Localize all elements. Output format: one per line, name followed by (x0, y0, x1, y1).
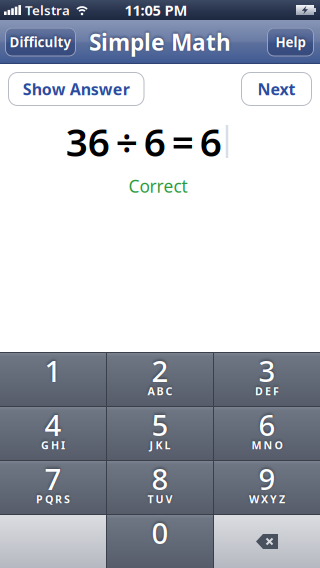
staticText: 36 ÷ 6 = 6 (66, 116, 222, 167)
staticText: Simple Math (89, 27, 231, 57)
staticText: D E F (255, 384, 279, 398)
staticText: Show Answer (23, 78, 130, 100)
staticText: 3 (258, 351, 275, 390)
staticText: G H I (41, 438, 65, 452)
staticText: 6 (258, 405, 275, 444)
button[interactable]: 4 (0, 407, 106, 460)
button[interactable]: Difficulty (5, 27, 76, 56)
staticText: A B C (147, 384, 172, 398)
button[interactable]: Next (241, 72, 312, 106)
staticText: Next (257, 78, 295, 100)
staticText: Difficulty (9, 33, 71, 51)
staticText: 1 (44, 351, 61, 390)
button[interactable]: 9 (214, 461, 320, 514)
button[interactable]: Help (267, 27, 314, 56)
staticText: 7 (44, 459, 61, 498)
staticText: 5 (151, 405, 168, 444)
staticText: 11:05 PM (124, 0, 187, 20)
button[interactable]: 3 (214, 353, 320, 406)
button[interactable]: Show Answer (8, 72, 144, 106)
button[interactable]: 0 (107, 515, 213, 568)
button[interactable]: 5 (107, 407, 213, 460)
staticText: 4 (44, 405, 61, 444)
staticText: T U V (147, 492, 172, 506)
staticText: W X Y Z (249, 492, 285, 506)
staticText: J K L (149, 438, 170, 452)
staticText: P Q R S (36, 492, 70, 506)
button[interactable]: 8 (107, 461, 213, 514)
button[interactable]: 1 (0, 353, 106, 406)
staticText: 0 (151, 513, 168, 552)
staticText: Correct (128, 174, 187, 197)
staticText: 2 (151, 351, 168, 390)
staticText: 9 (258, 459, 275, 498)
button[interactable]: 2 (107, 353, 213, 406)
staticText: Telstra (25, 1, 70, 19)
button[interactable]: 7 (0, 461, 106, 514)
button[interactable]: 6 (214, 407, 320, 460)
button[interactable]: Delete (214, 515, 320, 568)
staticText: M N O (251, 438, 282, 452)
staticText: Help (275, 33, 305, 51)
staticText: 8 (151, 459, 168, 498)
